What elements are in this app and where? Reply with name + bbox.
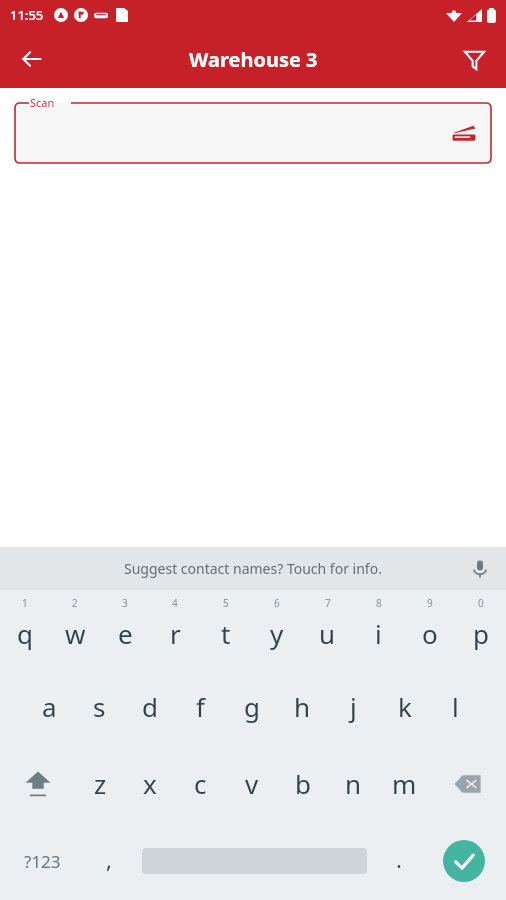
staticText: 0 bbox=[478, 596, 484, 610]
staticText: z bbox=[94, 766, 107, 801]
button[interactable]: f bbox=[175, 668, 226, 745]
staticText: p bbox=[473, 616, 489, 651]
staticText: v bbox=[245, 766, 259, 801]
button[interactable]: 9 bbox=[404, 590, 455, 668]
staticText: k bbox=[398, 689, 412, 724]
staticText: . bbox=[396, 844, 402, 874]
staticText: j bbox=[350, 689, 357, 724]
staticText: w bbox=[65, 616, 86, 651]
button[interactable]: m bbox=[379, 745, 430, 822]
staticText: s bbox=[93, 689, 106, 724]
staticText: 5 bbox=[223, 596, 229, 610]
staticText: Warehouse 3 bbox=[189, 46, 318, 73]
button[interactable]: s bbox=[74, 668, 124, 745]
staticText: x bbox=[143, 766, 157, 801]
button[interactable]: n bbox=[328, 745, 379, 822]
staticText: b bbox=[295, 766, 311, 801]
button[interactable]: Shift bbox=[0, 745, 75, 822]
staticText: r bbox=[170, 616, 181, 651]
staticText: d bbox=[142, 689, 158, 724]
staticText: Scan bbox=[30, 95, 55, 110]
staticText: o bbox=[422, 616, 438, 651]
button[interactable]: Back bbox=[8, 35, 56, 83]
staticText: t bbox=[221, 616, 231, 651]
button[interactable]: 0 bbox=[455, 590, 506, 668]
staticText: h bbox=[294, 689, 311, 724]
button[interactable]: 4 bbox=[150, 590, 200, 668]
staticText: 11:55 bbox=[10, 6, 44, 24]
button[interactable]: 3 bbox=[100, 590, 150, 668]
button[interactable]: x bbox=[125, 745, 175, 822]
button[interactable]: Scan barcode bbox=[444, 103, 484, 163]
button[interactable] bbox=[15, 103, 491, 163]
button[interactable]: Backspace bbox=[430, 745, 506, 822]
button[interactable]: z bbox=[75, 745, 125, 822]
button[interactable]: Suggest contact names? Touch for info. bbox=[0, 547, 506, 590]
button[interactable] bbox=[133, 822, 375, 900]
button[interactable]: v bbox=[226, 745, 277, 822]
staticText: i bbox=[375, 616, 382, 651]
staticText: y bbox=[270, 616, 284, 651]
staticText: 1 bbox=[22, 596, 28, 610]
staticText: 8 bbox=[376, 596, 382, 610]
button[interactable]: 1 bbox=[0, 590, 50, 668]
button[interactable]: . bbox=[375, 822, 422, 900]
button[interactable]: k bbox=[379, 668, 430, 745]
staticText: f bbox=[196, 689, 205, 724]
staticText: g bbox=[244, 689, 260, 724]
button[interactable]: h bbox=[277, 668, 328, 745]
staticText: e bbox=[118, 616, 133, 651]
button[interactable]: c bbox=[175, 745, 226, 822]
button[interactable]: ?123 bbox=[0, 822, 85, 900]
staticText: Suggest contact names? Touch for info. bbox=[124, 559, 382, 578]
button[interactable]: l bbox=[430, 668, 481, 745]
staticText: a bbox=[42, 689, 57, 724]
button[interactable]: a bbox=[24, 668, 74, 745]
button[interactable]: 2 bbox=[50, 590, 100, 668]
button[interactable]: g bbox=[226, 668, 277, 745]
button[interactable]: Filter bbox=[450, 35, 498, 83]
button[interactable]: d bbox=[124, 668, 175, 745]
staticText: m bbox=[392, 766, 417, 801]
button[interactable]: Done bbox=[422, 822, 506, 900]
staticText: u bbox=[319, 616, 336, 651]
staticText: q bbox=[17, 616, 33, 651]
staticText: n bbox=[345, 766, 362, 801]
staticText: 3 bbox=[122, 596, 128, 610]
staticText: 4 bbox=[172, 596, 178, 610]
button[interactable]: , bbox=[85, 822, 133, 900]
staticText: , bbox=[106, 844, 112, 874]
button[interactable]: b bbox=[277, 745, 328, 822]
staticText: 2 bbox=[72, 596, 78, 610]
staticText: 9 bbox=[427, 596, 433, 610]
staticText: c bbox=[194, 766, 207, 801]
button[interactable]: 6 bbox=[251, 590, 302, 668]
button[interactable]: j bbox=[328, 668, 379, 745]
staticText: 7 bbox=[325, 596, 331, 610]
staticText: ?123 bbox=[24, 850, 61, 873]
staticText: 6 bbox=[274, 596, 280, 610]
button[interactable]: 7 bbox=[302, 590, 353, 668]
button[interactable]: 8 bbox=[353, 590, 404, 668]
staticText: l bbox=[452, 689, 459, 724]
button[interactable]: 5 bbox=[200, 590, 251, 668]
button[interactable]: Voice input bbox=[462, 551, 498, 587]
